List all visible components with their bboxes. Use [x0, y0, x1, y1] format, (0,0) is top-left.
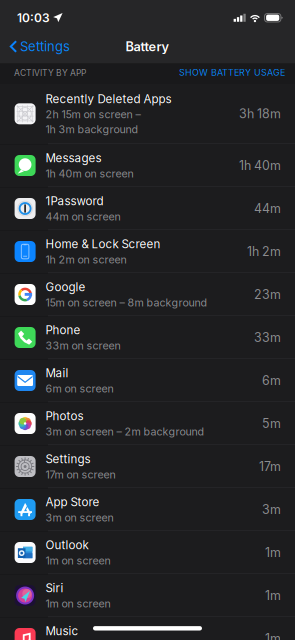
staticText: 2h 15m on screen –: [46, 108, 141, 121]
button[interactable]: Recently Deleted Apps: [0, 84, 295, 144]
staticText: 6m on screen: [46, 382, 114, 395]
staticText: 1Password: [46, 194, 104, 208]
button[interactable]: Google: [0, 273, 295, 316]
button[interactable]: Photos: [0, 402, 295, 445]
staticText: 3m on screen: [46, 511, 114, 524]
staticText: Phone: [46, 323, 81, 337]
staticText: 1h 40m: [239, 158, 281, 173]
staticText: Siri: [46, 581, 64, 595]
staticText: 1m on screen: [46, 554, 111, 567]
staticText: 33m on screen: [46, 339, 121, 352]
staticText: 33m: [254, 330, 281, 345]
staticText: Messages: [46, 151, 102, 165]
staticText: App Store: [46, 495, 100, 509]
staticText: 23m: [254, 287, 281, 302]
staticText: 3m on screen – 2m background: [46, 425, 205, 438]
staticText: 1h 3m background: [46, 123, 139, 136]
button[interactable]: Mail: [0, 359, 295, 402]
staticText: 1m: [265, 631, 281, 640]
staticText: Settings: [46, 452, 91, 466]
staticText: 1h 40m on screen: [46, 167, 134, 180]
button[interactable]: Outlook: [0, 531, 295, 574]
staticText: Battery: [125, 39, 169, 54]
staticText: 6m: [262, 373, 281, 388]
staticText: Photos: [46, 409, 84, 423]
staticText: Google: [46, 280, 86, 294]
staticText: 44m: [254, 201, 281, 216]
staticText: 1m: [265, 588, 281, 603]
button[interactable]: App Store: [0, 488, 295, 531]
button[interactable]: Settings: [0, 34, 76, 59]
button[interactable]: Settings: [0, 445, 295, 488]
staticText: 1m: [265, 545, 281, 560]
staticText: 10:03: [17, 10, 50, 25]
button[interactable]: Siri: [0, 574, 295, 617]
staticText: SHOW BATTERY USAGE: [179, 67, 285, 78]
staticText: Settings: [20, 39, 70, 54]
staticText: 1m on screen: [46, 597, 111, 610]
button[interactable]: Messages: [0, 144, 295, 187]
staticText: 1h 2m on screen: [46, 253, 127, 266]
button[interactable]: 1Password: [0, 187, 295, 230]
button[interactable]: SHOW BATTERY USAGE: [179, 67, 285, 78]
button[interactable]: Music: [0, 617, 295, 640]
button[interactable]: Phone: [0, 316, 295, 359]
staticText: 5m: [262, 416, 281, 431]
staticText: 17m: [259, 459, 281, 474]
staticText: Recently Deleted Apps: [46, 92, 172, 106]
staticText: 3m: [262, 502, 281, 517]
staticText: ACTIVITY BY APP: [14, 68, 86, 78]
staticText: 15m on screen – 8m background: [46, 296, 208, 309]
staticText: 1h 2m: [247, 244, 281, 259]
staticText: 44m on screen: [46, 210, 121, 223]
staticText: 3h 18m: [239, 106, 281, 121]
button[interactable]: Home & Lock Screen: [0, 230, 295, 273]
staticText: 17m on screen: [46, 468, 116, 481]
staticText: Music: [46, 624, 79, 638]
staticText: Mail: [46, 366, 69, 380]
staticText: Outlook: [46, 538, 89, 552]
staticText: Home & Lock Screen: [46, 237, 161, 251]
